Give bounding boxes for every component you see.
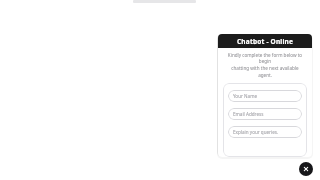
button[interactable]: Chatbot - Online (218, 34, 312, 48)
button[interactable]: Your Name (228, 90, 302, 102)
button[interactable]: Email Address (228, 108, 302, 120)
button[interactable]: Close chat (299, 162, 313, 176)
staticText: Chatbot - Online (237, 37, 294, 46)
staticText: Kindly complete the form below to begin … (225, 52, 305, 79)
staticText: Your Name (233, 93, 258, 99)
staticText: Email Address (233, 111, 264, 117)
staticText: Explain your queries. (233, 129, 279, 135)
button[interactable]: Explain your queries. (228, 126, 302, 138)
